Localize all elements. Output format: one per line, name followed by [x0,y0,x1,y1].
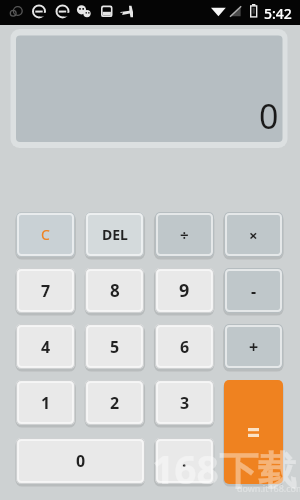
button[interactable] [224,380,283,484]
button[interactable]: DEL [85,212,144,257]
button[interactable]: . [155,438,214,484]
staticText: DEL [102,225,128,244]
staticText: 1 [41,392,51,414]
staticText: . [182,450,187,472]
staticText: 5:42 [264,4,292,23]
staticText: 4 [41,336,51,358]
staticText: 168下载 [152,442,297,495]
button[interactable]: 9 [155,268,214,313]
staticText: 3 [180,392,190,414]
staticText: 5 [110,336,120,358]
staticText: C [41,225,50,244]
staticText: 7 [41,280,51,302]
button[interactable]: 6 [155,324,214,369]
button[interactable]: + [224,324,283,369]
button[interactable]: 4 [16,324,75,369]
button[interactable]: 1 [16,380,75,425]
button[interactable]: C [16,212,75,257]
button[interactable]: 3 [155,380,214,425]
staticText: down.it168.com [237,482,300,494]
button[interactable]: 2 [85,380,144,425]
button[interactable]: × [224,212,283,257]
staticText: 0 [259,93,279,139]
staticText: × [249,225,258,245]
staticText: - [251,280,257,302]
button[interactable]: 7 [16,268,75,313]
staticText: 9 [179,278,190,303]
button[interactable]: - [224,268,283,313]
staticText: 0 [76,450,86,472]
staticText: ÷ [180,225,189,245]
staticText: 8 [110,279,120,302]
button[interactable]: ÷ [155,212,214,257]
staticText: 6 [180,336,190,358]
staticText: + [249,336,259,358]
button[interactable]: 0 [16,438,145,484]
button[interactable]: 5 [85,324,144,369]
button[interactable]: 8 [85,268,144,313]
staticText: 2 [110,392,120,414]
